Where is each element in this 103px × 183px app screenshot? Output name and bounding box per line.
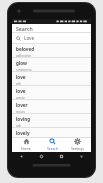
- button[interactable]: Love: [12, 33, 91, 43]
- staticText: adj: [16, 123, 22, 127]
- staticText: lovely: [16, 130, 30, 136]
- staticText: Settings: [71, 146, 84, 151]
- staticText: Search: [16, 25, 33, 32]
- button[interactable]: love: [12, 86, 91, 99]
- staticText: Search: [47, 146, 58, 151]
- staticText: Love: [24, 35, 35, 41]
- button[interactable]: love: [12, 72, 91, 85]
- button[interactable]: Home: [39, 154, 44, 159]
- staticText: loving: [16, 116, 31, 122]
- button[interactable]: glow: [12, 58, 91, 71]
- button[interactable]: Search: [12, 24, 91, 33]
- staticText: lover: [16, 102, 28, 108]
- button[interactable]: lovely: [12, 128, 91, 137]
- button[interactable]: Recents: [59, 154, 64, 159]
- button[interactable]: lover: [12, 100, 91, 113]
- button[interactable]: beloved: [12, 44, 91, 57]
- staticText: Home: [21, 146, 31, 151]
- button[interactable]: Back: [19, 154, 24, 159]
- button[interactable]: Home: [14, 137, 38, 152]
- staticText: beloved: [16, 46, 35, 52]
- staticText: glow: [16, 60, 27, 66]
- staticText: amar: [16, 95, 25, 99]
- button[interactable]: Settings: [65, 137, 89, 152]
- staticText: noun: [16, 109, 25, 113]
- staticText: love: [16, 74, 26, 80]
- staticText: love: [16, 88, 26, 94]
- button[interactable]: Keyboard: [79, 154, 84, 159]
- staticText: ahi: [16, 81, 22, 85]
- button[interactable]: Search: [40, 137, 64, 152]
- staticText: sinónimo: [16, 67, 32, 71]
- button[interactable]: loving: [12, 114, 91, 127]
- staticText: adjective: [16, 53, 31, 57]
